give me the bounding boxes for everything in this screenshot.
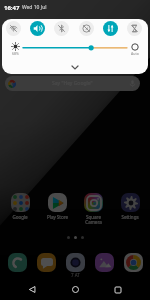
staticText: Settings [121,214,139,220]
button[interactable]: Back [21,279,43,300]
button[interactable]: Wi-Fi [6,21,21,36]
button[interactable]: Google [3,193,37,220]
button[interactable]: Brightness [23,43,127,55]
button[interactable]: Play Store [40,193,74,220]
button[interactable]: Mobile data [103,21,118,36]
button[interactable]: Bluetooth [54,21,69,36]
button[interactable]: Square Camera [76,193,110,225]
button[interactable]: Do not disturb [127,21,142,36]
staticText: Square Camera [85,214,102,225]
staticText: 68% [12,51,19,56]
button[interactable]: Photos [92,253,116,272]
staticText: 16:47 [4,4,20,12]
button[interactable]: Phone [5,253,29,272]
staticText: Auto [131,51,139,56]
button[interactable]: Home [64,279,86,300]
staticText: Say "Hey Google" [52,80,93,87]
button[interactable]: Expand quick settings [2,63,148,72]
button[interactable]: Sound [30,21,45,36]
staticText: Wed 10 Jul [22,4,47,11]
button[interactable]: Settings [113,193,147,220]
button[interactable]: Messages [34,253,58,272]
button[interactable]: Auto-rotate [79,21,94,36]
staticText: Google [12,214,28,220]
button[interactable]: Recents [107,279,129,300]
button[interactable]: Camera [63,253,87,278]
staticText: Play Store [47,214,68,220]
button[interactable]: Chrome [121,253,145,272]
button[interactable]: Search [5,76,140,91]
staticText: 7 AT [71,272,80,278]
button[interactable]: Auto brightness [127,43,143,56]
